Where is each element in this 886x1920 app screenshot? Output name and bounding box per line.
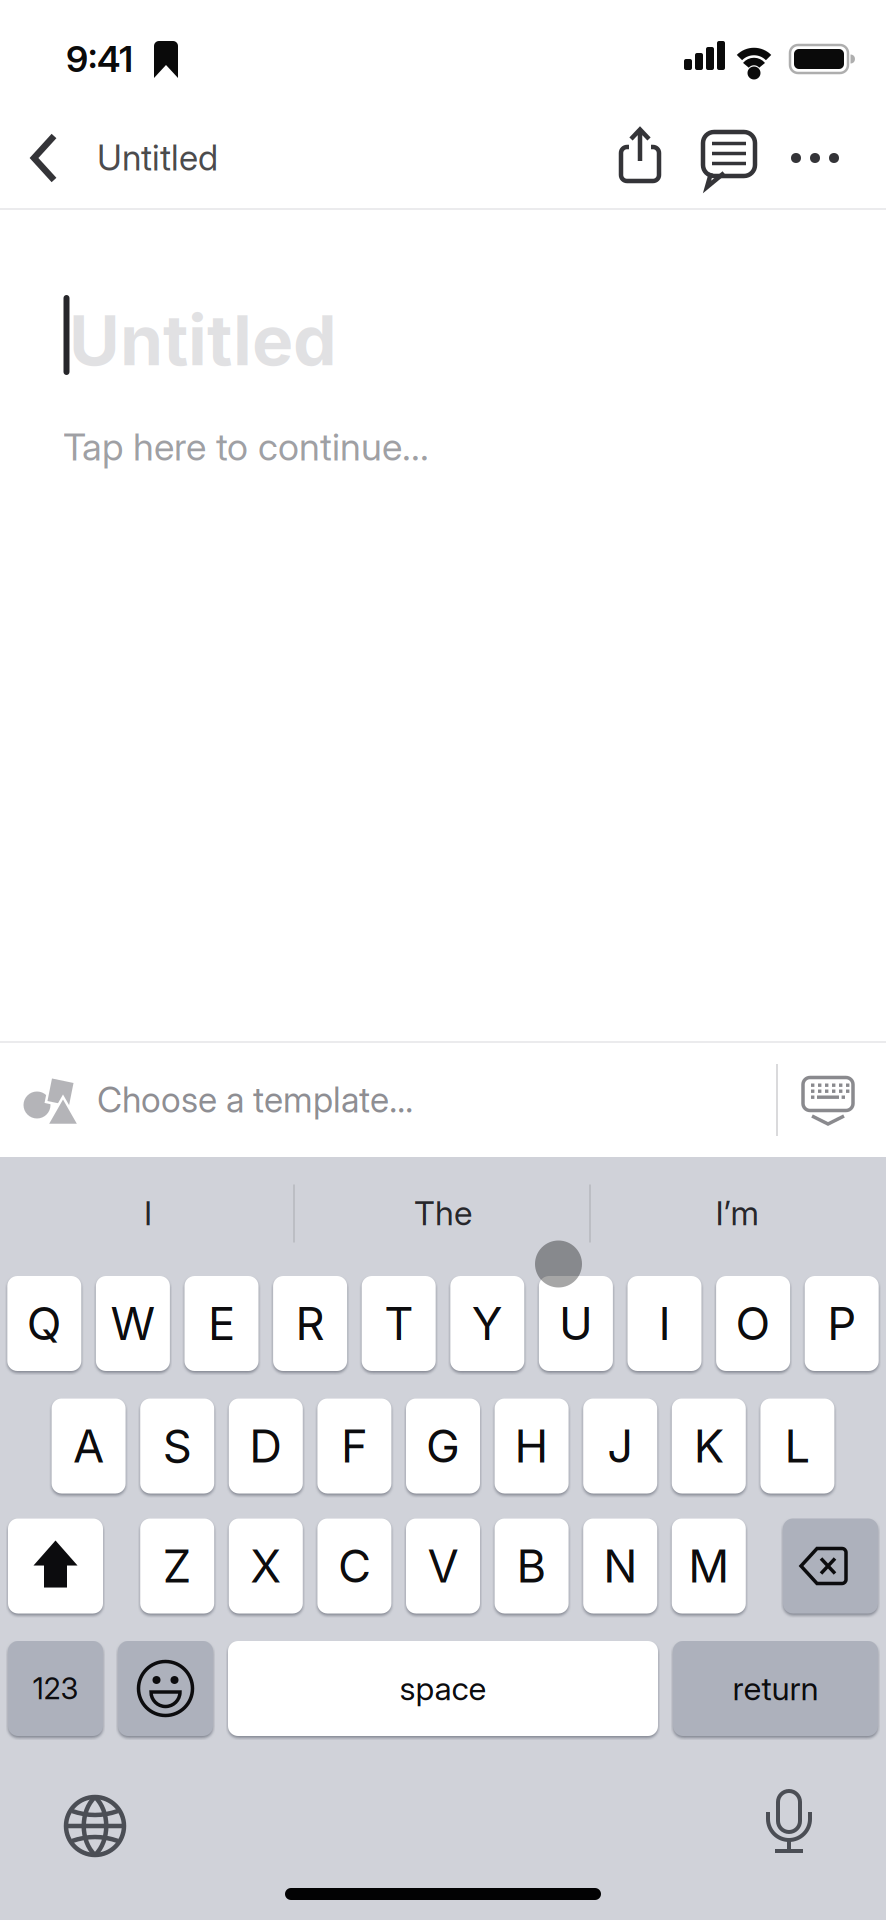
button[interactable]: S xyxy=(140,1398,214,1493)
button[interactable]: J xyxy=(583,1398,657,1493)
button[interactable]: K xyxy=(672,1398,746,1493)
button[interactable]: M xyxy=(672,1518,746,1613)
staticText: O xyxy=(736,1297,771,1350)
button[interactable]: G xyxy=(406,1398,480,1493)
staticText: F xyxy=(341,1419,368,1473)
button[interactable]: W xyxy=(96,1276,170,1371)
staticText: W xyxy=(110,1297,155,1350)
staticText: K xyxy=(694,1419,724,1473)
staticText: B xyxy=(517,1539,547,1593)
staticText: Untitled xyxy=(69,299,337,381)
staticText: T xyxy=(384,1297,413,1350)
staticText: Tap here to continue... xyxy=(63,425,429,469)
staticText: Z xyxy=(163,1539,192,1593)
staticText: P xyxy=(827,1297,856,1350)
button[interactable]: L xyxy=(760,1398,834,1493)
staticText: L xyxy=(784,1419,810,1473)
staticText: D xyxy=(249,1419,282,1473)
button[interactable]: Q xyxy=(7,1276,81,1371)
button[interactable]: I xyxy=(3,1168,293,1258)
button[interactable]: Next keyboard xyxy=(63,1794,127,1858)
button[interactable]: C xyxy=(317,1518,391,1613)
button[interactable]: R xyxy=(273,1276,347,1371)
button[interactable]: D xyxy=(229,1398,303,1493)
button[interactable]: More xyxy=(785,138,845,178)
staticText: N xyxy=(603,1539,637,1593)
staticText: I’m xyxy=(715,1193,758,1233)
button[interactable]: T xyxy=(362,1276,436,1371)
staticText: C xyxy=(338,1539,371,1593)
staticText: The xyxy=(414,1193,472,1233)
button[interactable]: I’m xyxy=(592,1168,882,1258)
staticText: E xyxy=(208,1297,235,1350)
button[interactable]: H xyxy=(495,1398,569,1493)
button[interactable]: U xyxy=(539,1276,613,1371)
staticText: J xyxy=(607,1419,633,1473)
staticText: Untitled xyxy=(97,138,218,178)
button[interactable]: I xyxy=(627,1276,701,1371)
staticText: I xyxy=(144,1193,152,1233)
staticText: Y xyxy=(472,1297,503,1350)
staticText: I xyxy=(658,1297,670,1350)
button[interactable]: The xyxy=(298,1168,588,1258)
button[interactable]: V xyxy=(406,1518,480,1613)
button[interactable]: Choose a template... xyxy=(0,1043,783,1156)
staticText: G xyxy=(426,1419,460,1473)
button[interactable]: F xyxy=(317,1398,391,1493)
button[interactable]: Z xyxy=(140,1518,214,1613)
button[interactable]: Dictate xyxy=(765,1791,813,1857)
button[interactable]: 123 xyxy=(8,1641,103,1736)
button[interactable]: Delete xyxy=(783,1518,878,1613)
staticText: return xyxy=(732,1670,818,1707)
staticText: Q xyxy=(27,1297,62,1350)
button[interactable]: A xyxy=(52,1398,126,1493)
button[interactable]: Share xyxy=(616,127,664,185)
staticText: H xyxy=(515,1419,549,1473)
button[interactable]: O xyxy=(716,1276,790,1371)
button[interactable]: Shift xyxy=(8,1518,103,1613)
staticText: A xyxy=(73,1419,104,1473)
button[interactable]: X xyxy=(229,1518,303,1613)
staticText: U xyxy=(559,1297,593,1350)
staticText: 9:41 xyxy=(66,38,133,80)
button[interactable]: B xyxy=(495,1518,569,1613)
button[interactable]: Dismiss keyboard xyxy=(802,1075,860,1129)
staticText: Choose a template... xyxy=(97,1080,413,1120)
button[interactable]: Back xyxy=(30,132,60,184)
button[interactable]: P xyxy=(805,1276,879,1371)
staticText: space xyxy=(399,1670,486,1707)
button[interactable]: N xyxy=(583,1518,657,1613)
button[interactable]: Emoji xyxy=(118,1641,213,1736)
staticText: 123 xyxy=(32,1671,78,1706)
button[interactable]: E xyxy=(184,1276,258,1371)
button[interactable]: Comments xyxy=(701,130,757,190)
staticText: V xyxy=(427,1539,458,1593)
button[interactable]: return xyxy=(673,1641,878,1736)
staticText: S xyxy=(163,1419,192,1473)
staticText: R xyxy=(296,1297,325,1350)
button[interactable]: Y xyxy=(450,1276,524,1371)
staticText: X xyxy=(250,1539,281,1593)
button[interactable]: space xyxy=(228,1641,658,1736)
staticText: M xyxy=(688,1539,729,1593)
